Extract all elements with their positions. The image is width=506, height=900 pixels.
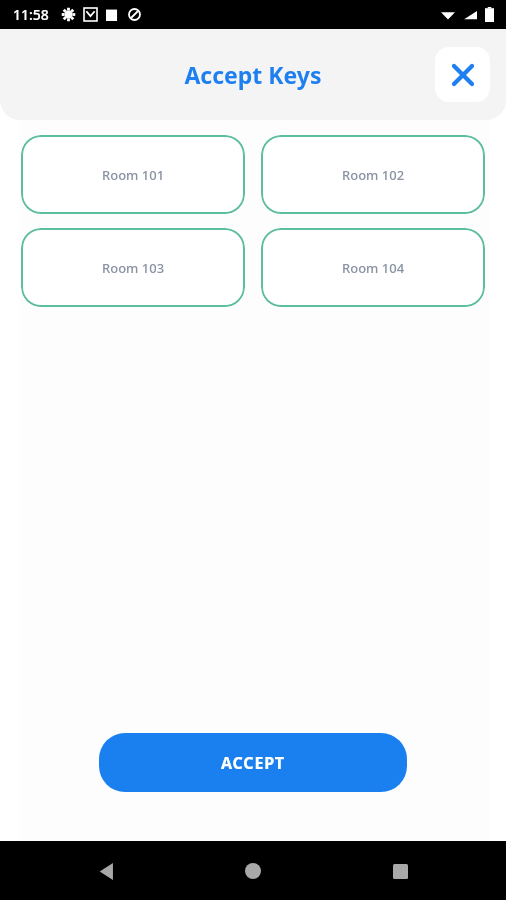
staticText: Room 104 <box>342 259 405 277</box>
button[interactable]: Room 103 <box>21 228 245 307</box>
staticText: ACCEPT <box>221 752 285 774</box>
button[interactable]: Room 102 <box>261 135 485 214</box>
button[interactable]: ACCEPT <box>99 733 407 792</box>
button[interactable]: Room 101 <box>21 135 245 214</box>
staticText: Room 101 <box>102 166 165 184</box>
button[interactable]: Close <box>435 47 490 102</box>
button[interactable]: Room 104 <box>261 228 485 307</box>
button[interactable]: Home <box>233 851 273 891</box>
button[interactable]: Recents <box>380 851 420 891</box>
staticText: 11:58 <box>13 5 49 24</box>
staticText: Accept Keys <box>184 59 322 90</box>
staticText: Room 102 <box>342 166 405 184</box>
button[interactable]: Back <box>86 851 126 891</box>
staticText: Room 103 <box>102 259 165 277</box>
